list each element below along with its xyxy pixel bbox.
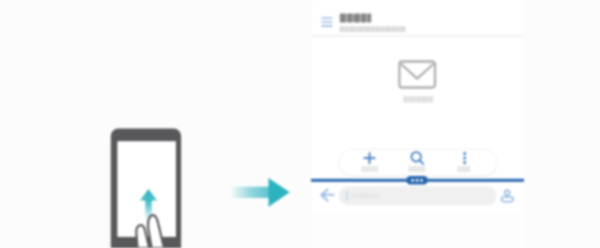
button[interactable]: More options <box>441 149 493 176</box>
button[interactable]: Back <box>316 185 338 206</box>
button[interactable]: Open navigation drawer <box>316 12 338 32</box>
button[interactable]: Account <box>498 185 518 206</box>
button[interactable]: Add <box>343 149 393 176</box>
button[interactable]: Mailbox title <box>338 8 416 36</box>
button[interactable]: Drag handle <box>404 174 430 187</box>
button[interactable]: Search <box>393 149 441 176</box>
button[interactable]: Address bar <box>339 186 497 205</box>
